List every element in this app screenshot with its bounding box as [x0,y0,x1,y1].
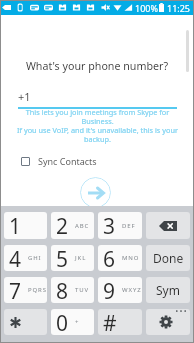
button[interactable]: Sym [146,277,190,303]
staticText: DEF [122,222,136,230]
button[interactable]: 9 [98,277,142,303]
button[interactable]: Star [4,309,47,335]
other: Backspace [159,221,177,231]
button[interactable]: Next [80,177,111,208]
staticText: 8 [56,277,69,303]
button[interactable]: 7 [4,277,47,303]
staticText: 5 [56,245,69,271]
staticText: 3 [103,212,116,239]
button[interactable]: 6 [98,245,142,271]
staticText: 0 [56,309,69,335]
staticText: 9 [103,277,116,303]
staticText: 2 [56,212,69,239]
staticText: # [103,309,117,335]
staticText: +1 [18,89,31,104]
staticText: Sym [156,282,180,298]
button[interactable]: 5 [51,245,94,271]
button[interactable]: 0 [51,309,94,335]
staticText: 4 [9,245,22,271]
staticText: JKL [75,254,87,262]
staticText: 100% [135,2,158,14]
staticText: What's your phone number? [0,59,194,74]
button[interactable]: Sync Contacts [21,155,97,167]
staticText: GHI [28,254,42,262]
button[interactable]: 1 [4,212,47,239]
staticText: WXYZ [122,286,142,294]
staticText: Sync Contacts [38,155,97,167]
staticText: + [75,318,80,326]
button[interactable]: 4 [4,245,47,271]
staticText: This lets you join meetings from Skype f… [17,107,178,144]
staticText: ABC [75,222,90,230]
button[interactable]: Backspace [146,212,190,239]
staticText: 7 [9,277,22,303]
staticText: Done [153,250,184,266]
other: Settings [146,309,190,335]
staticText: TUV [75,286,90,294]
staticText: 6 [103,245,116,271]
staticText: PQRS [28,286,47,294]
staticText: 1 [9,212,22,239]
button[interactable]: Done [146,245,190,271]
other: Star [10,317,21,328]
staticText: 11:25 [167,2,191,14]
button[interactable]: 3 [98,212,142,239]
staticText: MNO [122,254,140,262]
button[interactable]: 8 [51,277,94,303]
button[interactable]: Settings [146,309,190,335]
button[interactable]: 2 [51,212,94,239]
button[interactable]: # [98,309,142,335]
